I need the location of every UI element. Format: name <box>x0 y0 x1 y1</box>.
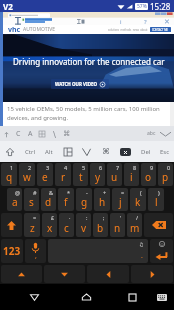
staticText: 3 <box>46 164 50 171</box>
staticText: ) <box>158 189 160 196</box>
button[interactable]: Ctrl <box>20 141 39 162</box>
button[interactable]: ' <box>110 213 125 237</box>
button[interactable]: Delete <box>115 141 136 162</box>
button[interactable]: Right <box>131 265 173 283</box>
button[interactable]: 6 <box>90 163 105 186</box>
button[interactable]: + <box>94 188 110 211</box>
staticText: c <box>64 221 69 235</box>
button[interactable]: ) <box>148 188 164 211</box>
button[interactable]: 5 <box>73 163 88 186</box>
staticText: 9 <box>150 164 154 171</box>
button[interactable]: 123 <box>1 239 23 263</box>
button[interactable]: = <box>112 188 128 211</box>
button[interactable]: Left <box>87 265 129 283</box>
button[interactable]: # <box>24 188 39 211</box>
button[interactable]: Switch keyboard <box>151 284 173 310</box>
staticText: 123 <box>3 244 21 258</box>
button[interactable]: WATCH OUR VIDEO <box>55 81 105 87</box>
staticText: V2 <box>3 1 13 12</box>
button[interactable]: ; <box>93 213 108 237</box>
button[interactable]: & <box>41 188 56 211</box>
staticText: - <box>86 189 88 196</box>
button[interactable]: Up <box>1 129 11 139</box>
staticText: h <box>99 195 106 209</box>
staticText: 15 vehicle OEMs, 50 models, 5 million ca… <box>7 105 167 122</box>
staticText: C <box>16 129 21 139</box>
button[interactable]: Shift <box>0 141 20 162</box>
button[interactable]: @ <box>7 188 22 211</box>
staticText: v <box>81 221 87 235</box>
staticText: vhc <box>8 25 21 34</box>
button[interactable]: Esc <box>155 141 174 162</box>
staticText: 4 <box>64 164 68 171</box>
button[interactable]: Copy <box>13 129 23 139</box>
staticText: abc <box>147 130 156 137</box>
button[interactable]: Down <box>44 265 85 283</box>
staticText: e <box>42 170 48 184</box>
staticText: x <box>47 221 53 235</box>
button[interactable]: Voice input <box>25 239 46 263</box>
button[interactable]: : <box>76 213 91 237</box>
button[interactable]: Tab <box>77 141 96 162</box>
staticText: w <box>23 170 31 184</box>
button[interactable]: Shift <box>1 213 22 237</box>
button[interactable]: Del <box>136 141 155 162</box>
button[interactable]: CONTACT ME <box>152 27 169 32</box>
button[interactable]: Command <box>61 129 71 139</box>
staticText: f <box>64 195 68 209</box>
staticText: WATCH OUR VIDEO <box>55 81 98 87</box>
button[interactable]: 1 <box>1 163 17 186</box>
button[interactable]: ( <box>130 188 146 211</box>
button[interactable]: · <box>59 213 74 237</box>
button[interactable]: / <box>127 213 142 237</box>
staticText: a <box>12 195 18 209</box>
button[interactable]: Space <box>48 239 148 263</box>
staticText: Alt <box>45 148 53 156</box>
staticText: b <box>97 221 104 235</box>
button[interactable]: Backslash <box>49 129 59 139</box>
button[interactable]: 3 <box>37 163 53 186</box>
button[interactable]: £ <box>42 213 57 237</box>
staticText: n <box>114 221 121 235</box>
button[interactable]: Alt <box>39 141 58 162</box>
staticText: 15:28 <box>150 1 171 12</box>
button[interactable]: 2 <box>19 163 35 186</box>
staticText: ? <box>144 18 147 25</box>
staticText: £ <box>51 214 55 221</box>
button[interactable]: = <box>24 213 40 237</box>
button[interactable]: Backspace <box>144 213 173 237</box>
button[interactable]: * <box>58 188 74 211</box>
staticText: ⌘ <box>102 147 110 156</box>
staticText: 5 <box>82 164 86 171</box>
staticText: ✕ <box>164 18 170 25</box>
button[interactable]: Home <box>74 284 98 310</box>
staticText: A <box>28 129 33 139</box>
staticText: p <box>162 170 169 184</box>
staticText: 8 <box>133 164 137 171</box>
staticText: m <box>130 221 140 235</box>
button[interactable]: 8 <box>124 163 139 186</box>
button[interactable]: Back <box>22 284 46 310</box>
button[interactable]: - <box>76 188 92 211</box>
staticText: z <box>30 221 35 235</box>
staticText: AUTOMOTIVE <box>23 26 55 33</box>
button[interactable]: Select all <box>25 129 35 139</box>
button[interactable]: Window <box>58 141 77 162</box>
button[interactable]: Up <box>1 265 42 283</box>
staticText: \ <box>53 129 56 139</box>
staticText: k <box>135 195 141 209</box>
staticText: : <box>86 214 88 221</box>
button[interactable]: Grid <box>37 129 47 139</box>
button[interactable]: Command <box>96 141 115 162</box>
button[interactable]: Recent apps <box>120 284 144 310</box>
staticText: · <box>69 214 71 221</box>
button[interactable]: 7 <box>107 163 122 186</box>
staticText: Driving innovation for the connected car <box>13 56 165 67</box>
button[interactable]: 4 <box>55 163 71 186</box>
button[interactable]: 9 <box>141 163 156 186</box>
button[interactable]: 0 <box>158 163 173 186</box>
staticText: 57% <box>137 3 147 10</box>
staticText: ⌘ <box>63 130 70 138</box>
staticText: t <box>79 170 83 184</box>
button[interactable]: Enter <box>150 239 173 263</box>
